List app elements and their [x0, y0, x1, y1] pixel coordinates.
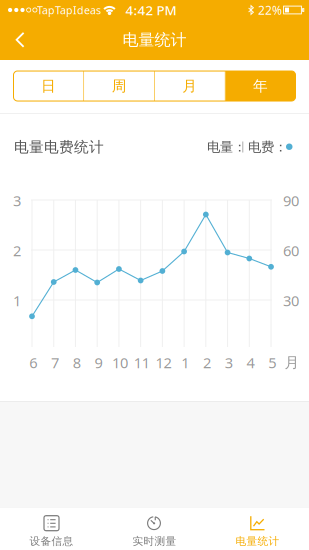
button[interactable]: 电量统计	[206, 507, 309, 550]
staticText: 2	[13, 241, 21, 260]
staticText: 8	[73, 353, 81, 372]
staticText: 1	[181, 353, 189, 372]
staticText: 设备信息	[29, 535, 73, 548]
staticText: 电量统计	[122, 30, 186, 50]
button[interactable]: 实时测量	[103, 507, 206, 550]
staticText: 电费：	[248, 139, 287, 155]
staticText: 电量统计	[235, 535, 279, 548]
staticText: 年	[253, 77, 268, 95]
staticText: 3	[225, 353, 233, 372]
button[interactable]: 年	[225, 71, 295, 101]
staticText: 1	[13, 291, 21, 310]
button[interactable]: Back	[0, 20, 41, 60]
staticText: 周	[112, 77, 127, 95]
staticText: 6	[29, 353, 37, 372]
button[interactable]: 日	[13, 71, 83, 101]
staticText: 9	[94, 353, 102, 372]
button[interactable]: 设备信息	[0, 507, 103, 550]
staticText: 4:42 PM	[125, 1, 176, 19]
button[interactable]: 月	[155, 71, 225, 101]
staticText: 7	[51, 353, 59, 372]
staticText: 12	[156, 353, 172, 372]
staticText: TapTapIdeas	[37, 3, 101, 17]
staticText: 5	[268, 353, 276, 372]
staticText: 60	[283, 241, 299, 260]
staticText: 11	[134, 353, 150, 372]
button[interactable]: 周	[84, 71, 154, 101]
staticText: 日	[41, 77, 56, 95]
staticText: 月	[182, 77, 197, 95]
staticText: 10	[112, 353, 128, 372]
staticText: 实时测量	[132, 535, 176, 548]
staticText: 月	[284, 353, 299, 371]
staticText: 3	[13, 191, 21, 210]
staticText: 2	[203, 353, 211, 372]
staticText: 4	[246, 353, 254, 372]
staticText: 90	[283, 191, 299, 210]
staticText: 电量电费统计	[14, 138, 104, 156]
staticText: 30	[283, 291, 299, 310]
staticText: 22%	[258, 2, 282, 18]
staticText: 电量：	[207, 139, 246, 155]
